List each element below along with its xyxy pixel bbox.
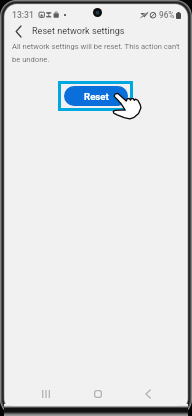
button[interactable]: Back <box>9 22 27 40</box>
staticText: Reset <box>84 91 109 102</box>
staticText: 96% <box>159 10 175 20</box>
staticText: Reset network settings <box>32 26 125 37</box>
button[interactable]: Home <box>85 382 111 406</box>
button[interactable]: Recent apps <box>33 382 59 406</box>
staticText: 13:31 <box>12 10 34 20</box>
button[interactable]: Reset <box>64 86 128 106</box>
button[interactable]: Back <box>135 382 161 406</box>
staticText: All network settings will be reset. This… <box>12 42 182 63</box>
